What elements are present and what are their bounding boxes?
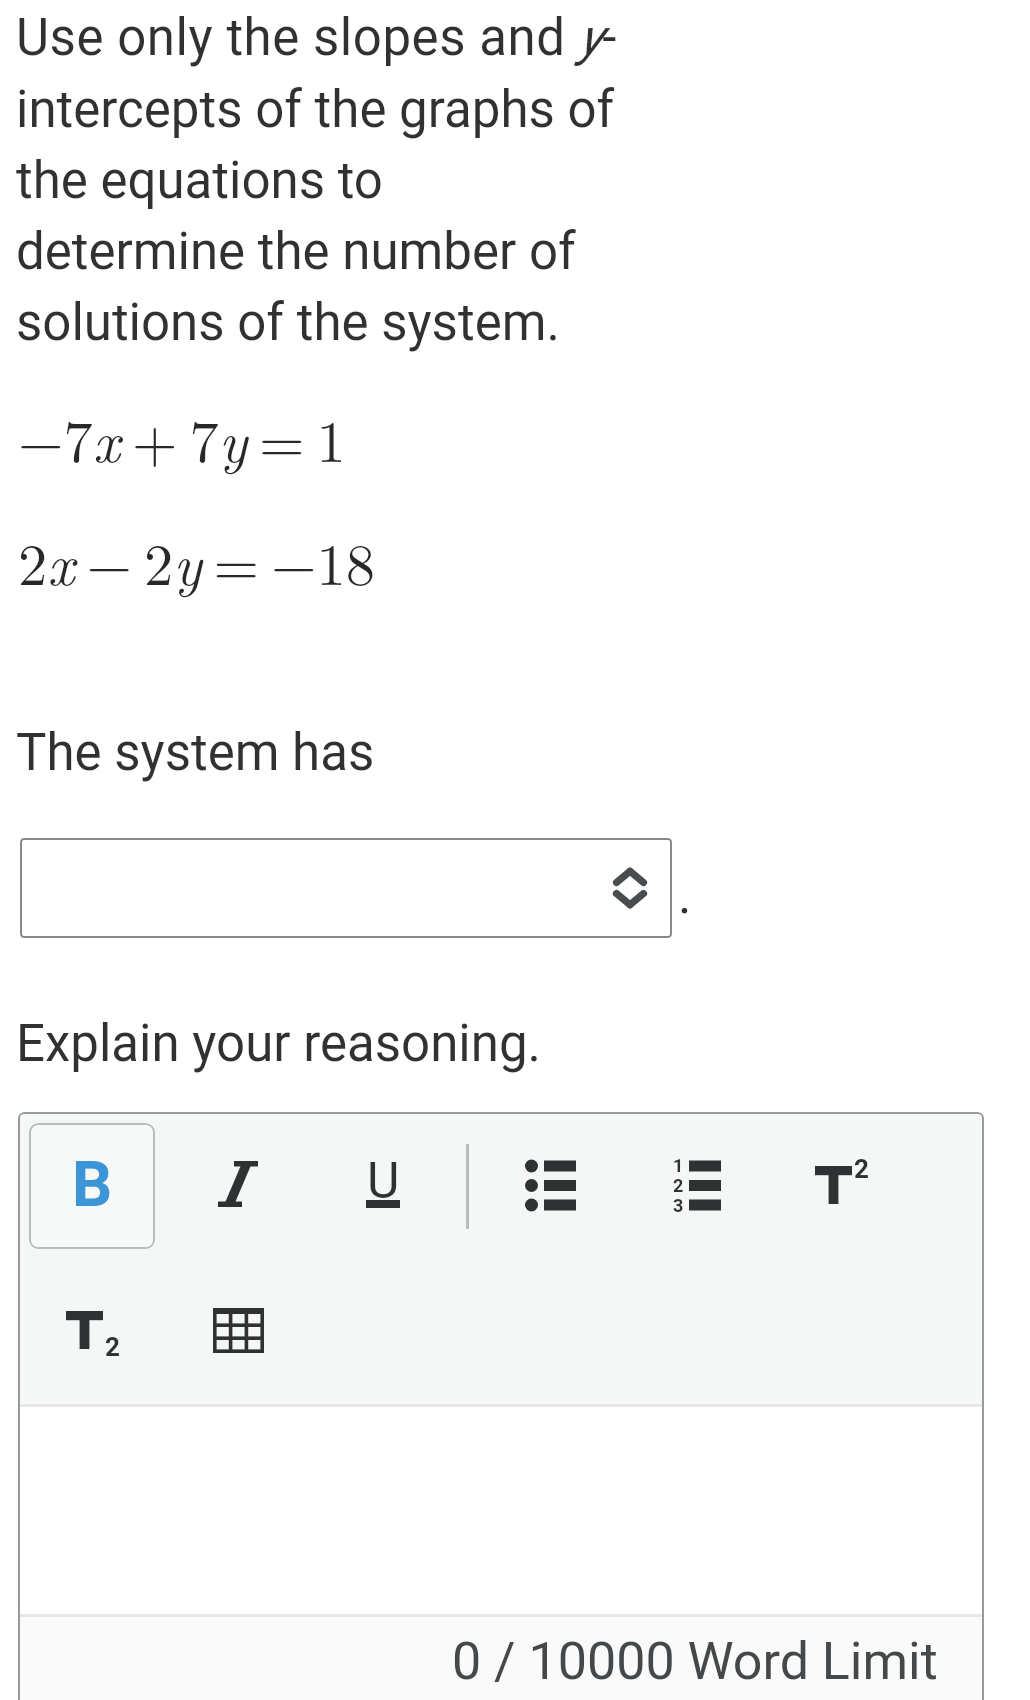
staticText: 2x − 2y = −18 [18,519,376,602]
button[interactable]: Superscript [778,1123,904,1249]
staticText: −7x + 7y = 1 [18,396,346,479]
staticText: Explain your reasoning. [16,1014,541,1074]
button[interactable]: B [29,1123,155,1249]
button[interactable]: Numbered list [634,1123,760,1249]
staticText: 2 [854,1154,869,1184]
button[interactable] [175,1123,301,1249]
staticText: The system has [16,723,375,783]
staticText: 0 / 10000 Word Limit [452,1631,938,1692]
staticText: Use only the slopes and y- intercepts of… [16,8,617,352]
button[interactable]: Subscript [29,1269,155,1395]
staticText: U [367,1152,400,1211]
staticText: B [72,1148,113,1222]
button[interactable]: Insert table [175,1267,301,1393]
button[interactable]: Select number of solutions [20,838,672,938]
staticText: . [678,866,692,926]
button[interactable]: Underline [320,1120,446,1246]
staticText: 2 [105,1332,120,1362]
button[interactable]: Bulleted list [488,1123,614,1249]
staticText: 1 2 3 [673,1155,684,1216]
